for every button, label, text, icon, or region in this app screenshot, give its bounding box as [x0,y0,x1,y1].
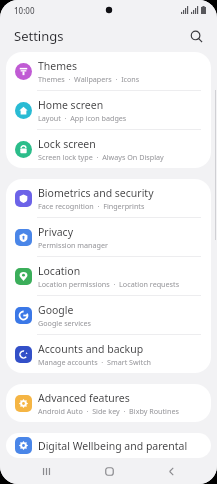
button[interactable]: Google [6,296,211,334]
staticText: Manage accounts · Smart Switch [38,357,152,367]
staticText: Home screen [38,98,104,112]
button[interactable]: Location [6,257,211,295]
button[interactable]: Advanced features [6,384,211,422]
button[interactable]: Back [154,458,188,484]
button[interactable]: Recent apps [29,458,63,484]
staticText: Digital Wellbeing and parental [38,439,188,453]
staticText: Location permissions · Location requests [38,279,180,289]
staticText: Accounts and backup [38,342,144,356]
staticText: Themes [38,59,78,73]
button[interactable]: Biometrics and security [6,179,211,217]
button[interactable]: Lock screen [6,130,211,168]
staticText: Biometrics and security [38,186,154,200]
staticText: Location [38,264,81,278]
staticText: Settings [14,27,64,45]
staticText: Android Auto · Side key · Bixby Routines [38,406,179,416]
button[interactable]: Search [183,23,209,49]
staticText: Google services [38,318,92,328]
staticText: Layout · App icon badges [38,113,127,123]
button[interactable]: Home [92,458,126,484]
staticText: Screen lock type · Always On Display [38,152,164,162]
button[interactable]: Digital Wellbeing and parental [6,433,211,458]
staticText: 10:00 [14,5,35,16]
staticText: Permission manager [38,240,109,250]
staticText: Face recognition · Fingerprints [38,201,145,211]
button[interactable]: Themes [6,52,211,90]
staticText: Google [38,303,74,317]
button[interactable]: Privacy [6,218,211,256]
staticText: Privacy [38,225,74,239]
staticText: Lock screen [38,137,96,151]
button[interactable]: Home screen [6,91,211,129]
button[interactable]: Accounts and backup [6,335,211,373]
staticText: Themes · Wallpapers · Icons [38,74,140,84]
staticText: Advanced features [38,391,130,405]
